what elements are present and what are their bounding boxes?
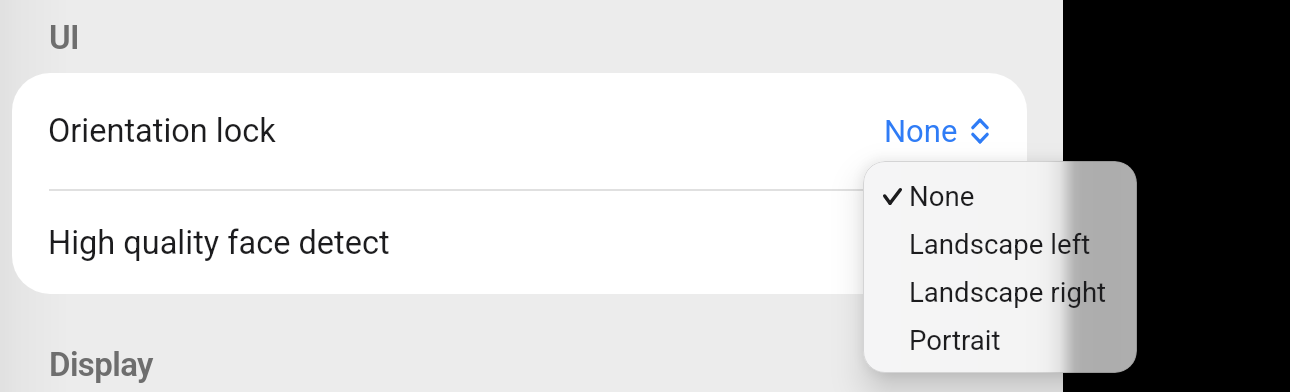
button[interactable]: None bbox=[863, 172, 1137, 220]
staticText: None bbox=[909, 180, 975, 212]
staticText: Orientation lock bbox=[48, 112, 276, 150]
staticText: None bbox=[884, 113, 958, 149]
staticText: Portrait bbox=[909, 324, 1001, 356]
staticText: High quality face detect bbox=[48, 224, 390, 262]
staticText: Landscape right bbox=[909, 276, 1107, 308]
staticText: Landscape left bbox=[909, 228, 1091, 260]
button[interactable]: Orientation lock bbox=[12, 73, 1027, 189]
staticText: UI bbox=[49, 18, 79, 57]
other: Change orientation lock bbox=[970, 117, 990, 145]
button[interactable]: Portrait bbox=[863, 316, 1137, 364]
button[interactable]: High quality face detect bbox=[12, 191, 1027, 294]
button[interactable]: Landscape left bbox=[863, 220, 1137, 268]
staticText: Display bbox=[49, 345, 153, 384]
button[interactable]: Landscape right bbox=[863, 268, 1137, 316]
